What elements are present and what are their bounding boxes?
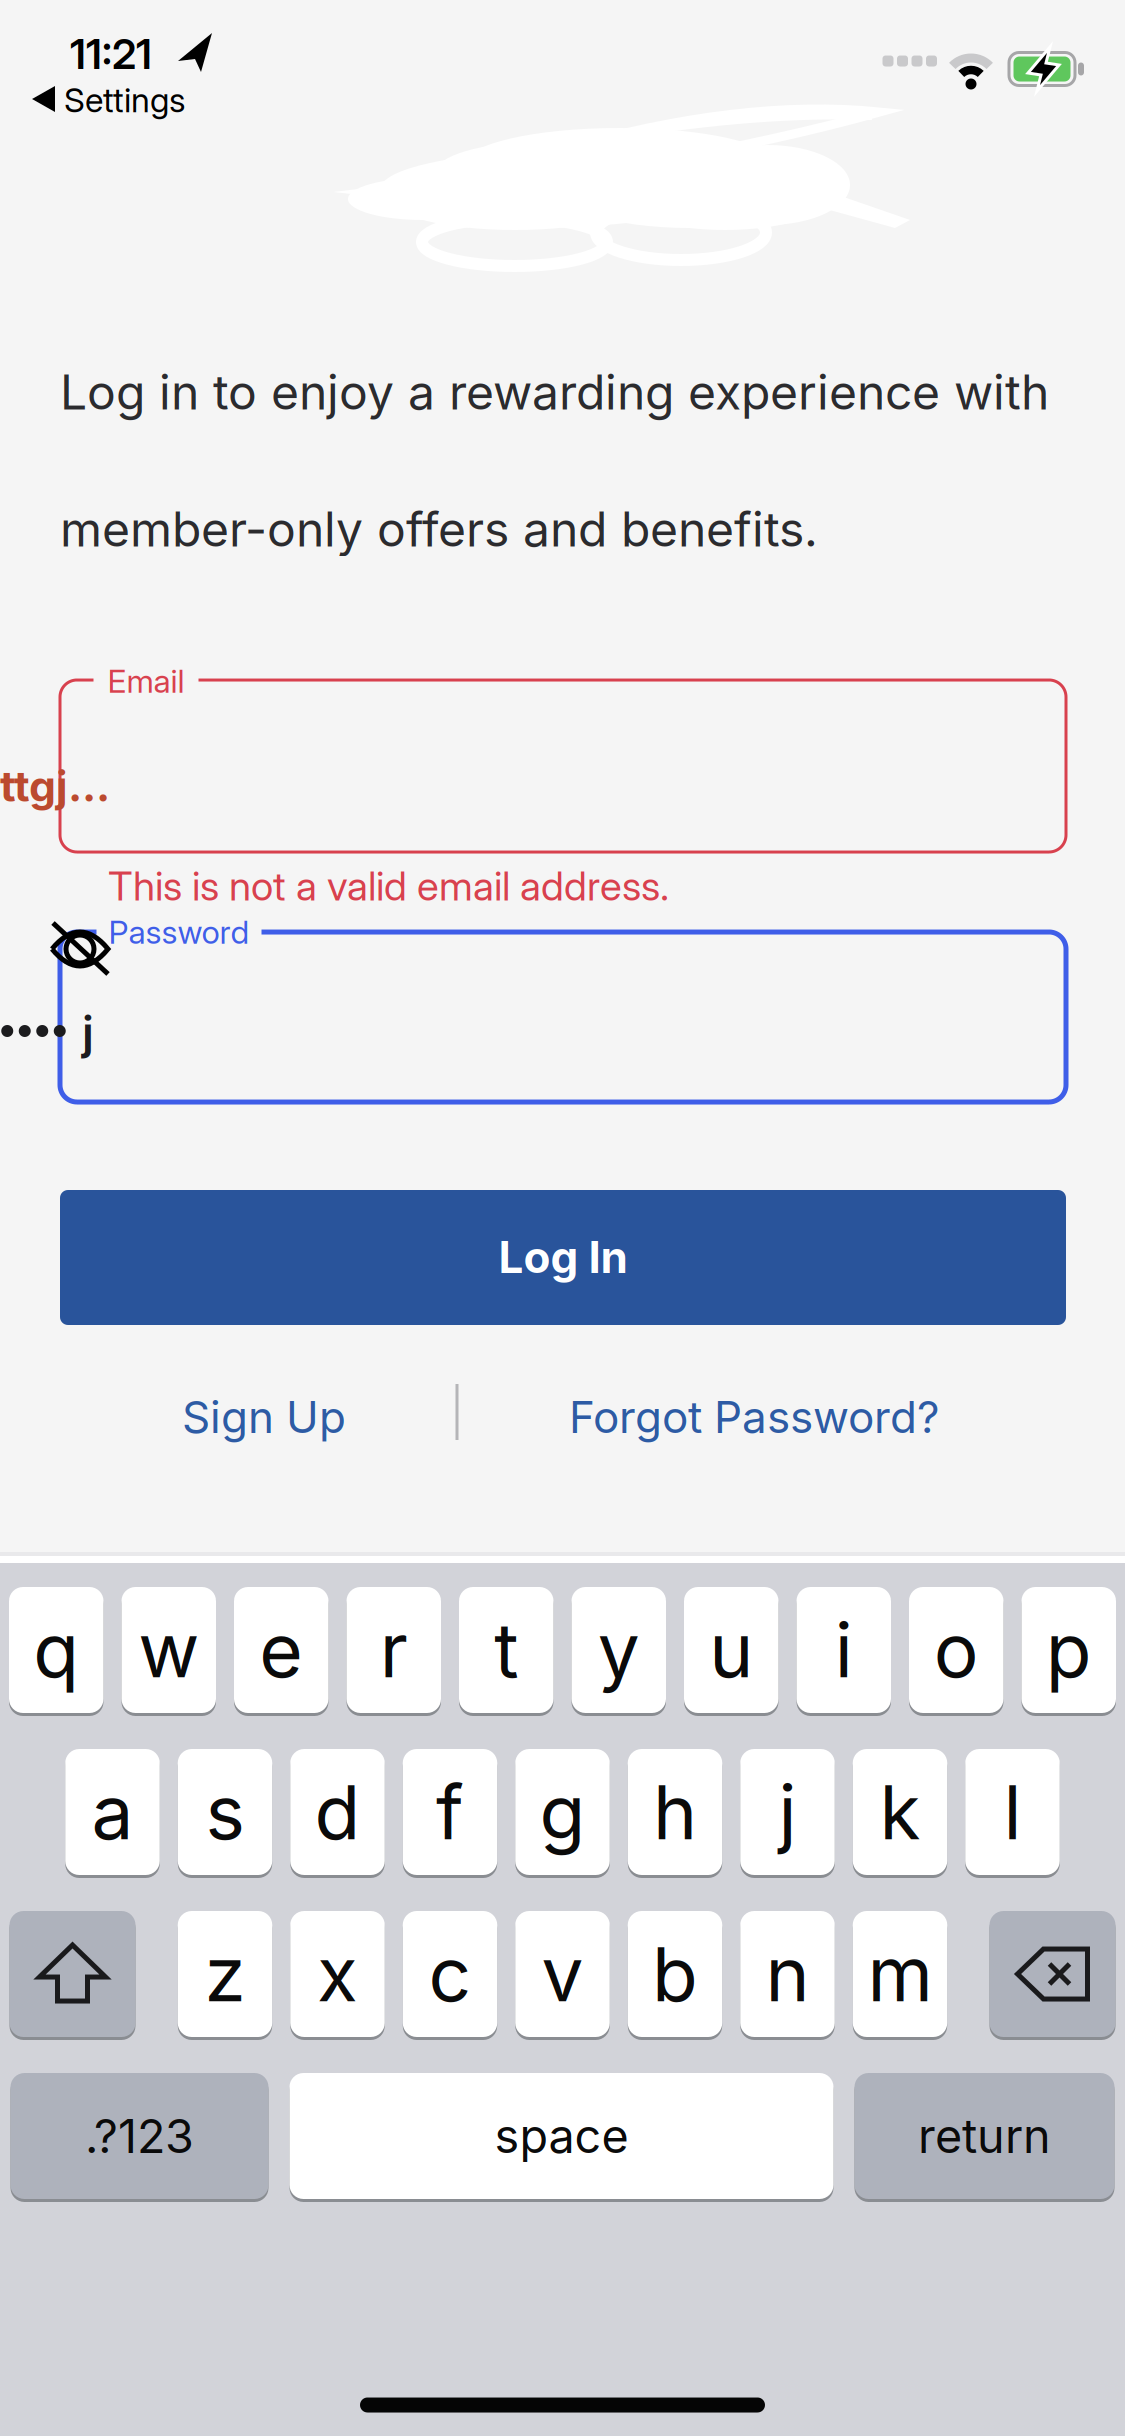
staticText: q: [33, 1606, 79, 1694]
staticText: k: [879, 1768, 920, 1856]
staticText: member-only offers and benefits.: [60, 501, 818, 557]
staticText: Log In: [498, 1231, 627, 1283]
staticText: g: [539, 1768, 585, 1856]
staticText: s: [205, 1768, 244, 1856]
staticText: Email: [107, 662, 184, 700]
staticText: v: [541, 1930, 583, 2018]
staticText: u: [709, 1606, 753, 1694]
staticText: j: [82, 1006, 94, 1060]
staticText: h: [653, 1768, 697, 1856]
staticText: j: [778, 1768, 796, 1856]
staticText: x: [317, 1930, 358, 2018]
staticText: l: [1003, 1768, 1021, 1856]
staticText: t: [494, 1606, 518, 1694]
staticText: o: [934, 1606, 979, 1694]
staticText: w: [138, 1606, 199, 1694]
staticText: n: [765, 1930, 809, 2018]
staticText: i: [835, 1606, 853, 1694]
staticText: d: [314, 1768, 360, 1856]
staticText: This is not a valid email address.: [108, 862, 669, 910]
staticText: Settings: [64, 80, 186, 120]
staticText: m: [867, 1930, 932, 2018]
staticText: return: [918, 2108, 1051, 2164]
staticText: ttgj...: [0, 761, 110, 811]
staticText: y: [598, 1606, 640, 1694]
staticText: a: [91, 1768, 133, 1856]
staticText: Password: [108, 913, 249, 951]
staticText: r: [380, 1606, 408, 1694]
staticText: Log in to enjoy a rewarding experience w…: [60, 364, 1049, 420]
staticText: space: [494, 2108, 628, 2164]
staticText: z: [204, 1930, 245, 2018]
staticText: Sign Up: [182, 1391, 346, 1443]
staticText: e: [259, 1606, 303, 1694]
staticText: c: [428, 1930, 471, 2018]
staticText: Forgot Password?: [569, 1391, 939, 1443]
staticText: b: [652, 1930, 698, 2018]
staticText: f: [436, 1768, 464, 1856]
staticText: .?123: [85, 2108, 194, 2164]
staticText: 11:21: [70, 30, 152, 78]
staticText: p: [1046, 1606, 1092, 1694]
